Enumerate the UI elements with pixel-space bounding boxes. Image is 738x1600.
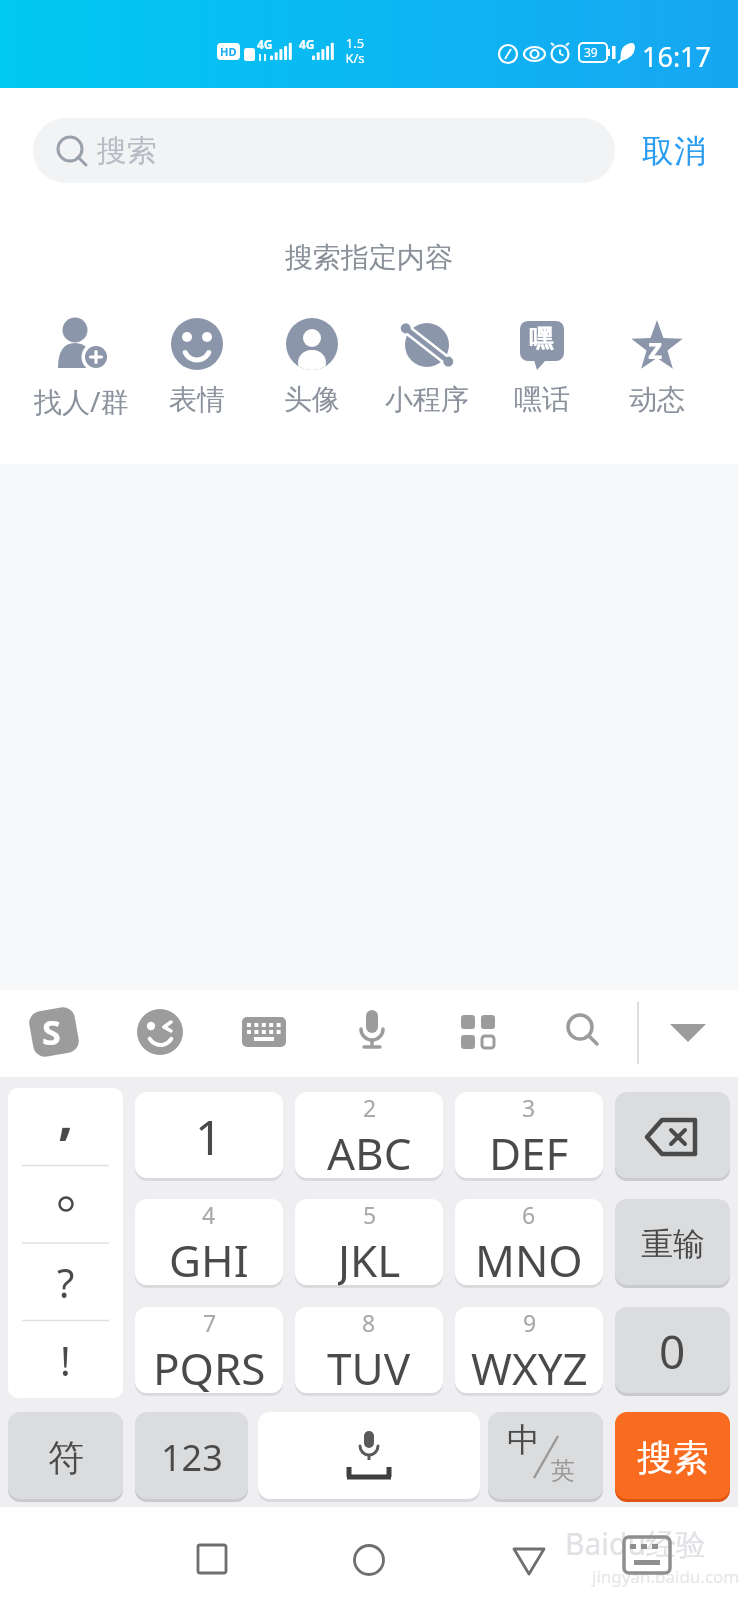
staticText: 搜索: [97, 132, 157, 170]
button[interactable]: [258, 1412, 480, 1502]
staticText: 9: [523, 1307, 537, 1338]
staticText: Baidu经验: [565, 1523, 707, 1564]
staticText: 4: [202, 1199, 216, 1230]
staticText: 16:17: [642, 38, 712, 75]
button[interactable]: [8, 1165, 123, 1243]
button[interactable]: 搜索: [33, 118, 615, 183]
button[interactable]: 8: [295, 1307, 443, 1396]
button[interactable]: [668, 1022, 708, 1046]
button[interactable]: 9: [455, 1307, 603, 1396]
button[interactable]: !: [8, 1321, 123, 1398]
staticText: 4G: [299, 36, 315, 52]
staticText: 4G: [257, 36, 273, 52]
button[interactable]: 5: [295, 1199, 443, 1288]
staticText: 8: [362, 1307, 376, 1338]
button[interactable]: [196, 1543, 228, 1575]
button[interactable]: 1: [135, 1092, 283, 1181]
button[interactable]: S: [28, 1006, 80, 1058]
staticText: ABC: [327, 1123, 412, 1181]
button[interactable]: [615, 1092, 730, 1181]
button[interactable]: [559, 1008, 607, 1056]
staticText: PQRS: [153, 1338, 266, 1396]
button[interactable]: [353, 1544, 385, 1576]
button[interactable]: [135, 1007, 185, 1057]
staticText: jingyan.baidu.com: [592, 1565, 738, 1588]
button[interactable]: 3: [455, 1092, 603, 1181]
button[interactable]: [454, 1008, 502, 1056]
button[interactable]: 头像: [254, 316, 369, 417]
staticText: 1.5 K/s: [340, 34, 370, 67]
button[interactable]: 取消: [642, 131, 706, 171]
button[interactable]: 找人/群: [24, 316, 139, 420]
staticText: GHI: [169, 1230, 249, 1288]
staticText: 英: [551, 1456, 575, 1486]
staticText: 小程序: [385, 382, 469, 417]
staticText: 头像: [284, 382, 340, 417]
button[interactable]: 搜索: [615, 1412, 730, 1502]
button[interactable]: 小程序: [369, 316, 484, 417]
staticText: JKL: [338, 1230, 401, 1288]
staticText: 3: [522, 1092, 536, 1123]
staticText: 找人/群: [34, 382, 129, 420]
staticText: 1: [195, 1104, 223, 1169]
staticText: 搜索: [637, 1435, 709, 1480]
staticText: ,: [58, 1088, 74, 1150]
button[interactable]: [512, 1547, 546, 1577]
staticText: ?: [57, 1255, 75, 1309]
staticText: 7: [203, 1307, 217, 1338]
staticText: 5: [363, 1199, 377, 1230]
staticText: 123: [161, 1433, 223, 1482]
staticText: 中: [507, 1419, 540, 1461]
staticText: WXYZ: [471, 1338, 588, 1396]
button[interactable]: 表情: [139, 316, 254, 417]
button[interactable]: 2: [295, 1092, 443, 1181]
staticText: 动态: [629, 382, 685, 417]
button[interactable]: ?: [8, 1243, 123, 1321]
button[interactable]: 符: [8, 1412, 123, 1502]
button[interactable]: ,: [8, 1088, 123, 1166]
staticText: MNO: [475, 1230, 583, 1288]
button[interactable]: 重输: [615, 1199, 730, 1288]
button[interactable]: 6: [455, 1199, 603, 1288]
button[interactable]: 0: [615, 1307, 730, 1396]
staticText: 取消: [642, 131, 706, 171]
staticText: 符: [48, 1435, 84, 1480]
staticText: 6: [522, 1199, 536, 1230]
staticText: 表情: [169, 382, 225, 417]
staticText: !: [60, 1333, 71, 1387]
staticText: 重输: [641, 1224, 705, 1264]
staticText: 39: [584, 44, 598, 60]
staticText: 嘿话: [514, 382, 570, 417]
button[interactable]: [348, 1006, 396, 1054]
staticText: 嘿: [529, 324, 553, 354]
staticText: 0: [659, 1320, 686, 1383]
staticText: S: [42, 1009, 61, 1055]
button[interactable]: 嘿: [484, 316, 599, 417]
button[interactable]: [240, 1008, 288, 1056]
staticText: DEF: [489, 1123, 569, 1181]
staticText: 2: [363, 1092, 377, 1123]
staticText: HD: [220, 44, 237, 59]
button[interactable]: 中: [488, 1412, 603, 1502]
button[interactable]: 123: [135, 1412, 248, 1502]
button[interactable]: 4: [135, 1199, 283, 1288]
staticText: TUV: [327, 1338, 411, 1396]
staticText: 搜索指定内容: [285, 240, 453, 275]
staticText: z: [648, 328, 663, 367]
button[interactable]: z: [599, 316, 714, 417]
button[interactable]: 7: [135, 1307, 283, 1396]
